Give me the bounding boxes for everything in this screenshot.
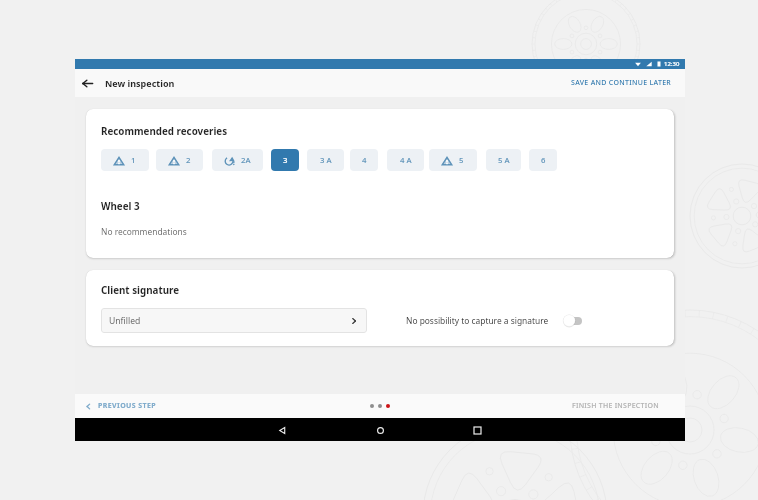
button[interactable]: Home <box>371 421 389 439</box>
button[interactable]: 5 <box>429 149 477 171</box>
button[interactable]: 1 <box>101 149 149 171</box>
staticText: PREVIOUS STEP <box>98 401 157 411</box>
button[interactable]: Recent apps <box>468 421 486 439</box>
staticText: 1 <box>131 155 136 166</box>
button[interactable]: 3 <box>271 149 299 171</box>
button[interactable]: SAVE AND CONTINUE LATER <box>558 71 685 95</box>
staticText: 3 A <box>320 155 332 166</box>
staticText: FINISH THE INSPECTION <box>572 401 659 411</box>
staticText: 6 <box>541 155 546 166</box>
staticText: Client signature <box>101 284 180 297</box>
button[interactable]: Back <box>78 74 97 93</box>
staticText: 4 A <box>400 155 412 166</box>
button[interactable]: 4 A <box>387 149 424 171</box>
button[interactable]: No possibility to capture a signature <box>406 314 582 327</box>
button[interactable]: 6 <box>529 149 557 171</box>
button[interactable]: 5 A <box>486 149 521 171</box>
staticText: Recommended recoveries <box>101 125 228 138</box>
button[interactable]: Back <box>273 421 291 439</box>
button[interactable]: FINISH THE INSPECTION <box>564 395 667 417</box>
staticText: 12:30 <box>664 60 680 68</box>
staticText: 2 <box>186 155 191 166</box>
staticText: Unfilled <box>109 315 141 327</box>
staticText: No possibility to capture a signature <box>406 315 549 326</box>
button[interactable]: 2A <box>212 149 263 171</box>
button[interactable]: Unfilled <box>101 308 367 333</box>
button[interactable]: 3 A <box>307 149 344 171</box>
staticText: Wheel 3 <box>101 200 140 213</box>
staticText: 5 A <box>498 155 510 166</box>
staticText: 2A <box>241 155 251 166</box>
staticText: No recommendations <box>101 226 187 237</box>
button[interactable]: 4 <box>350 149 378 171</box>
staticText: 5 <box>459 155 464 166</box>
staticText: SAVE AND CONTINUE LATER <box>571 78 672 88</box>
staticText: 4 <box>362 155 367 166</box>
staticText: New inspection <box>105 77 175 89</box>
staticText: 3 <box>283 155 288 166</box>
button[interactable]: PREVIOUS STEP <box>81 397 161 415</box>
button[interactable]: 2 <box>156 149 203 171</box>
